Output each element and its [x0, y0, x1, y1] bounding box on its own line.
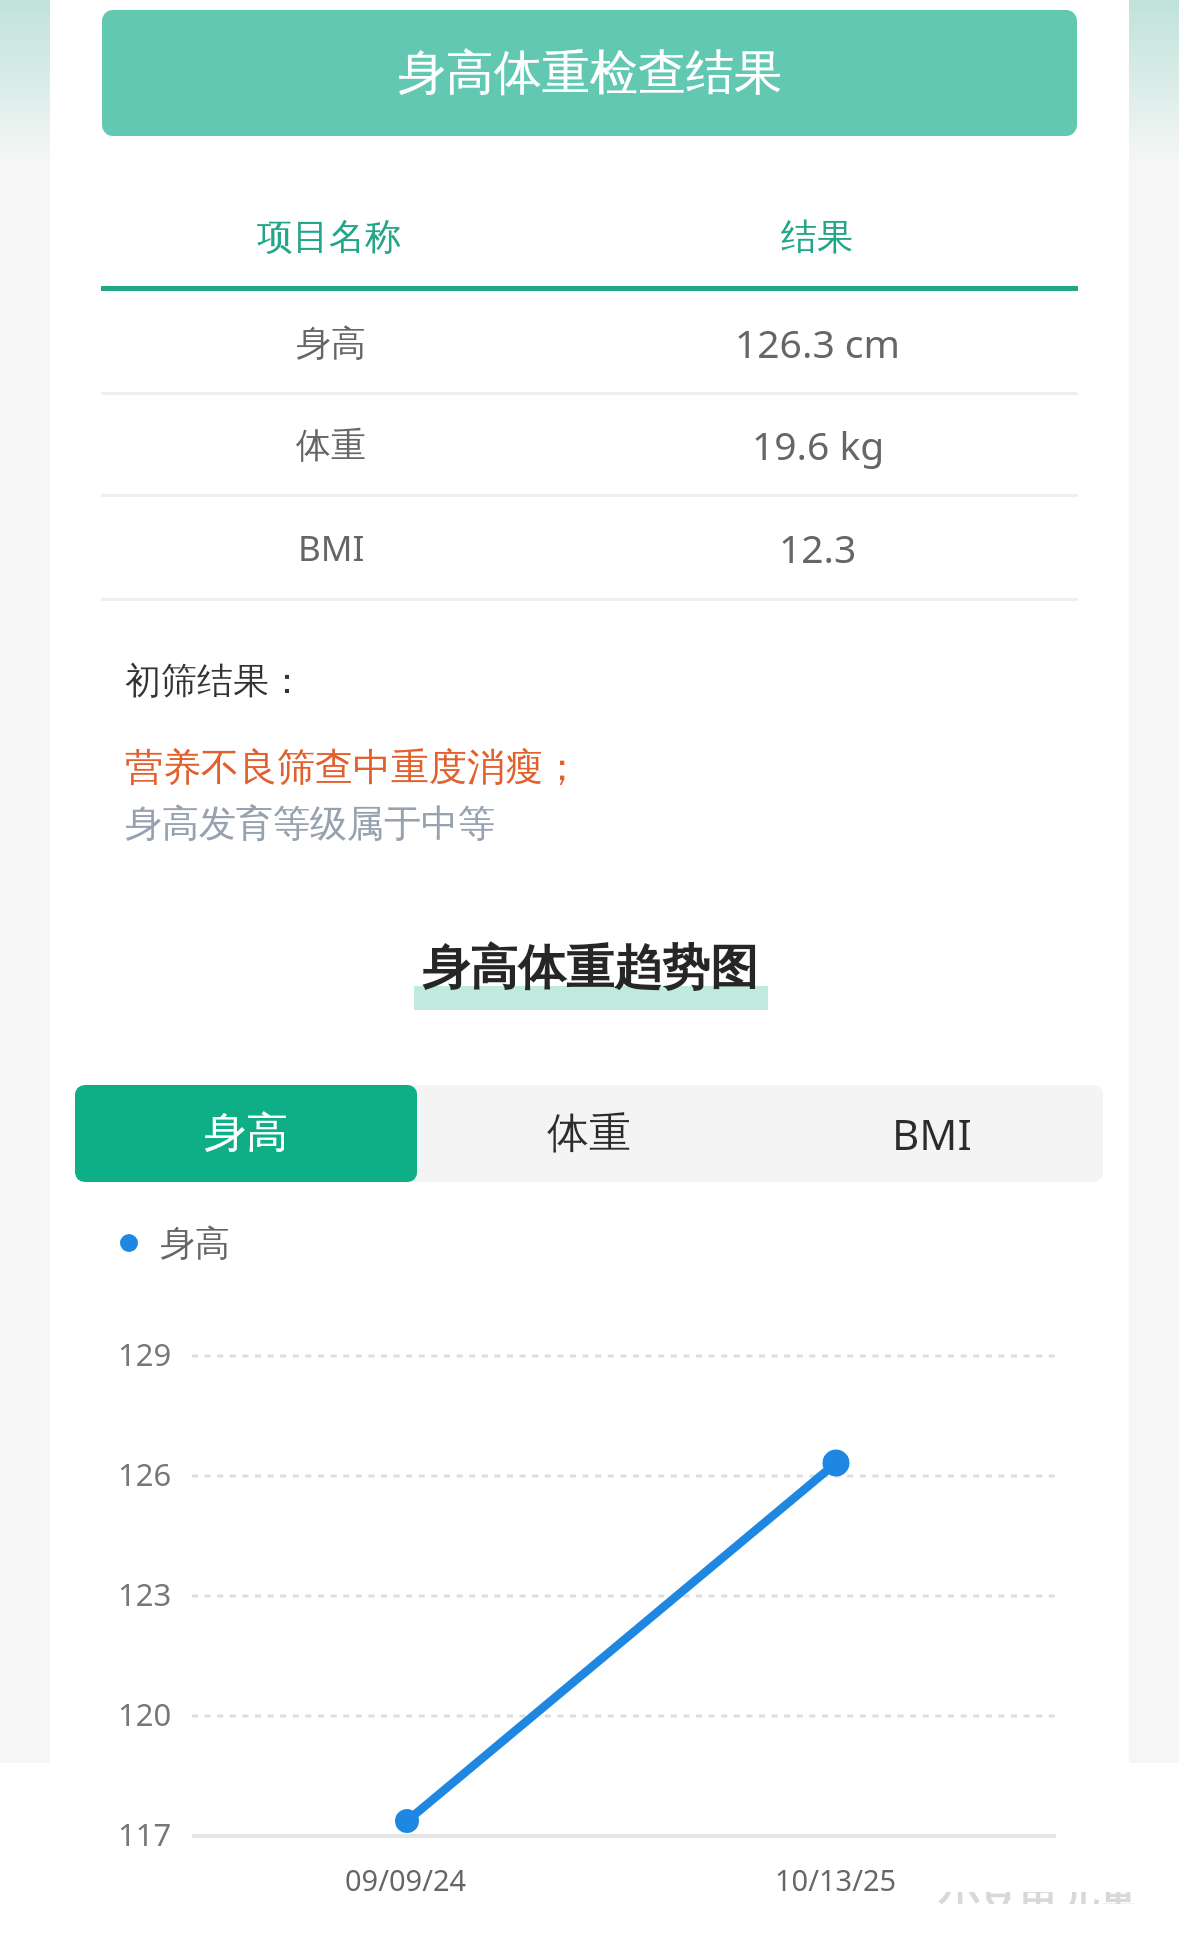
staticText: 126.3 cm [735, 316, 901, 369]
button[interactable] [101, 392, 1078, 494]
staticText: 身高 [160, 1221, 230, 1265]
staticText: 身高 [296, 321, 366, 365]
staticText: 初筛结果： [125, 658, 305, 703]
staticText: 身高体重趋势图 [422, 938, 758, 998]
staticText: BMI [892, 1105, 972, 1162]
staticText: 身高体重检查结果 [398, 43, 782, 103]
staticText: 体重 [547, 1107, 631, 1160]
button[interactable]: 体重 [417, 1085, 760, 1182]
button[interactable] [101, 494, 1078, 598]
other: Height series colour [120, 1234, 138, 1252]
staticText: 小豆苗儿童健康 [938, 1892, 1158, 1904]
button[interactable] [101, 291, 1078, 392]
button[interactable]: 身高体重检查结果 [102, 10, 1077, 136]
staticText: 身高发育等级属于中等 [125, 800, 495, 847]
staticText: 117 [118, 1813, 172, 1855]
staticText: BMI [298, 524, 365, 572]
staticText: 126 [118, 1453, 172, 1495]
button[interactable]: Height series colour [120, 1221, 230, 1265]
button[interactable]: 身高 [75, 1085, 417, 1182]
staticText: 120 [118, 1693, 172, 1735]
staticText: 09/09/24 [345, 1860, 467, 1899]
staticText: 19.6 kg [752, 418, 885, 471]
staticText: 10/13/25 [775, 1860, 897, 1899]
staticText: 129 [118, 1333, 172, 1375]
staticText: 123 [118, 1573, 172, 1615]
button[interactable]: BMI [760, 1085, 1103, 1182]
staticText: 结果 [781, 214, 853, 259]
staticText: 身高 [204, 1107, 288, 1160]
staticText: 营养不良筛查中重度消瘦； [125, 743, 581, 791]
staticText: 项目名称 [257, 214, 401, 259]
staticText: 体重 [296, 423, 366, 467]
staticText: 12.3 [779, 521, 857, 574]
